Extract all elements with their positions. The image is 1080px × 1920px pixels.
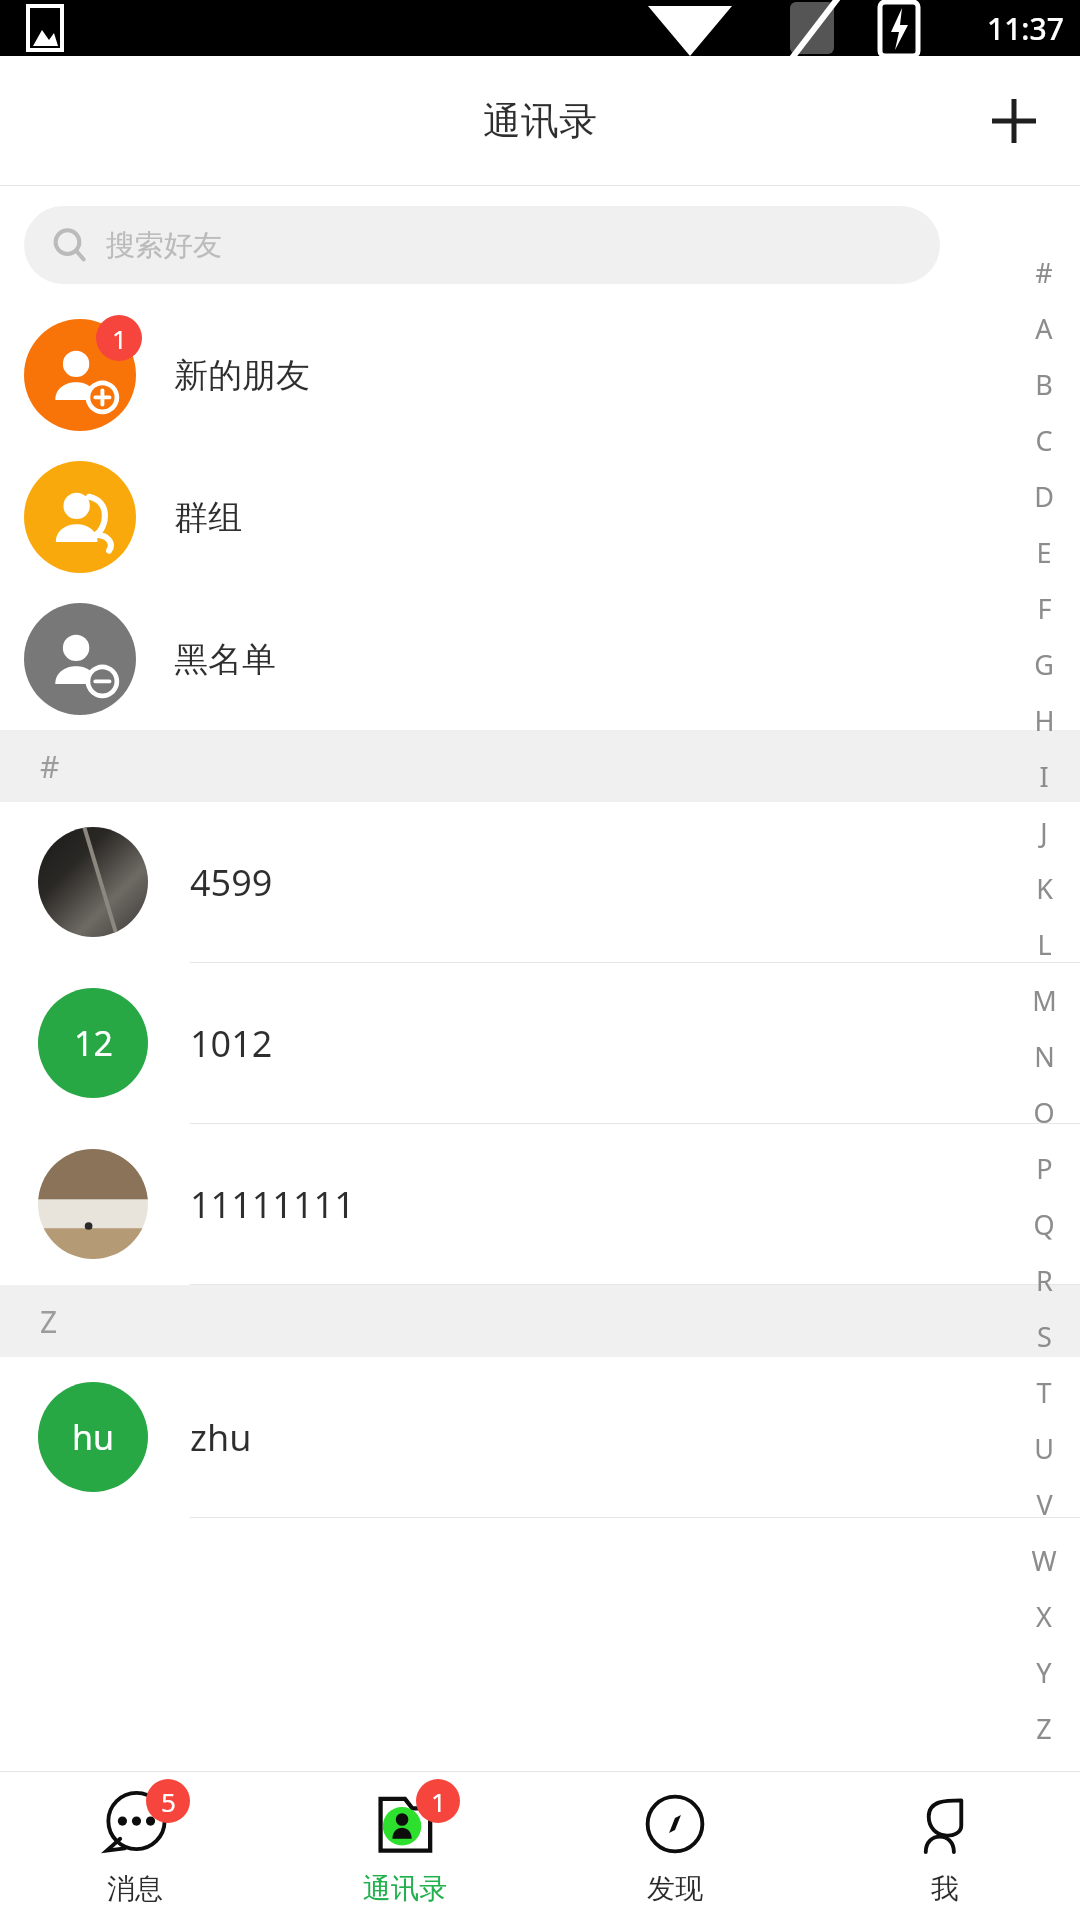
staticText: 通讯录	[483, 97, 597, 145]
button[interactable]: hu	[0, 1357, 1080, 1517]
button[interactable]: I	[1039, 758, 1049, 795]
staticText: G	[1034, 646, 1054, 683]
staticText: V	[1036, 1486, 1053, 1523]
button[interactable]: Y	[1036, 1654, 1052, 1691]
button[interactable]: Z	[1036, 1710, 1052, 1747]
button[interactable]: 搜索好友	[24, 206, 940, 284]
staticText: 消息	[107, 1871, 163, 1906]
staticText: R	[1036, 1262, 1053, 1299]
button[interactable]: 4599	[0, 802, 1080, 962]
staticText: 11:37	[987, 8, 1064, 49]
staticText: 搜索好友	[106, 227, 222, 264]
button[interactable]: U	[1034, 1430, 1054, 1467]
staticText: S	[1037, 1318, 1052, 1355]
button[interactable]: H	[1034, 702, 1055, 739]
staticText: 1012	[190, 1019, 273, 1068]
staticText: L	[1037, 926, 1052, 963]
staticText: Z	[1036, 1710, 1052, 1747]
button[interactable]: Q	[1033, 1206, 1055, 1243]
staticText: 12	[74, 1020, 113, 1066]
button[interactable]: S	[1037, 1318, 1052, 1355]
staticText: 通讯录	[363, 1871, 447, 1906]
button[interactable]: W	[1031, 1542, 1057, 1579]
button[interactable]: O	[1033, 1094, 1055, 1131]
button[interactable]: C	[1035, 422, 1053, 459]
button[interactable]: T	[1036, 1374, 1052, 1411]
staticText: 群组	[174, 496, 242, 539]
button[interactable]: F	[1037, 590, 1052, 627]
staticText: O	[1033, 1094, 1055, 1131]
staticText: N	[1034, 1038, 1055, 1075]
staticText: 新的朋友	[174, 354, 310, 397]
staticText: I	[1039, 758, 1049, 795]
button[interactable]: A	[1035, 310, 1053, 347]
button[interactable]: 发现	[540, 1772, 810, 1920]
button[interactable]: 12	[0, 963, 1080, 1123]
staticText: T	[1036, 1374, 1052, 1411]
button[interactable]: V	[1036, 1486, 1053, 1523]
staticText: #	[40, 746, 60, 787]
staticText: Q	[1033, 1206, 1055, 1243]
staticText: W	[1031, 1542, 1057, 1579]
staticText: X	[1036, 1598, 1052, 1635]
staticText: 1	[112, 321, 127, 356]
staticText: D	[1034, 478, 1054, 515]
button[interactable]: 黑名单	[0, 588, 1080, 730]
button[interactable]: #	[1035, 254, 1053, 291]
button[interactable]: M	[1032, 982, 1057, 1019]
staticText: hu	[72, 1414, 115, 1460]
button[interactable]: K	[1036, 870, 1053, 907]
staticText: 5	[161, 1784, 176, 1819]
button[interactable]: L	[1037, 926, 1052, 963]
button[interactable]: G	[1034, 646, 1054, 683]
staticText: 4599	[190, 858, 273, 907]
staticText: M	[1032, 982, 1057, 1019]
staticText: U	[1034, 1430, 1054, 1467]
button[interactable]: P	[1036, 1150, 1053, 1187]
staticText: 11111111	[190, 1180, 355, 1229]
button[interactable]: 我	[810, 1772, 1080, 1920]
staticText: 发现	[647, 1871, 703, 1906]
staticText: K	[1036, 870, 1053, 907]
button[interactable]: Add	[982, 89, 1046, 153]
staticText: E	[1036, 534, 1052, 571]
staticText: 我	[931, 1871, 959, 1906]
staticText: P	[1036, 1150, 1053, 1187]
button[interactable]: X	[1036, 1598, 1052, 1635]
staticText: Z	[40, 1301, 58, 1342]
staticText: Y	[1036, 1654, 1052, 1691]
staticText: J	[1040, 814, 1048, 851]
staticText: A	[1035, 310, 1053, 347]
staticText: 1	[431, 1784, 446, 1819]
staticText: F	[1037, 590, 1052, 627]
button[interactable]: N	[1034, 1038, 1055, 1075]
button[interactable]: 群组	[0, 446, 1080, 588]
staticText: H	[1034, 702, 1055, 739]
button[interactable]: 11111111	[0, 1124, 1080, 1284]
button[interactable]: 1	[270, 1772, 540, 1920]
button[interactable]: B	[1035, 366, 1053, 403]
staticText: 黑名单	[174, 638, 276, 681]
button[interactable]: D	[1034, 478, 1054, 515]
button[interactable]: 5	[0, 1772, 270, 1920]
staticText: #	[1035, 254, 1053, 291]
button[interactable]: R	[1036, 1262, 1053, 1299]
button[interactable]: E	[1036, 534, 1052, 571]
staticText: B	[1035, 366, 1053, 403]
button[interactable]: 1	[0, 304, 1080, 446]
staticText: C	[1035, 422, 1053, 459]
button[interactable]: J	[1040, 814, 1048, 851]
staticText: zhu	[190, 1413, 252, 1462]
